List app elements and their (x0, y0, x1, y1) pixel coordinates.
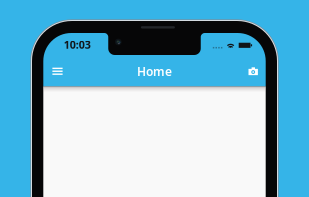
button[interactable]: Camera (241, 58, 265, 84)
button[interactable]: Menu (45, 58, 69, 84)
staticText: Home (137, 63, 172, 79)
staticText: 10:03 (64, 38, 91, 52)
